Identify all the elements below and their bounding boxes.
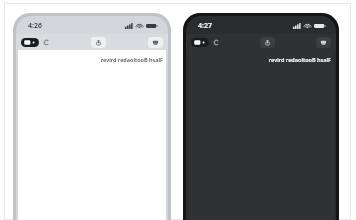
staticText: 4:27 (198, 21, 212, 31)
button[interactable]: Share (260, 37, 275, 48)
button[interactable]: Refresh (43, 39, 50, 46)
button[interactable]: Page settings (191, 38, 209, 47)
button[interactable]: Refresh (213, 39, 220, 46)
button[interactable]: Tabs (148, 37, 163, 48)
staticText: 4:26 (28, 21, 42, 31)
button[interactable]: Page settings (21, 38, 39, 47)
staticText: revird redaoltooB hsalF (100, 56, 163, 63)
staticText: revird redaoltooB hsalF (268, 56, 331, 63)
button[interactable]: Share (91, 37, 106, 48)
button[interactable]: Tabs (316, 37, 331, 48)
